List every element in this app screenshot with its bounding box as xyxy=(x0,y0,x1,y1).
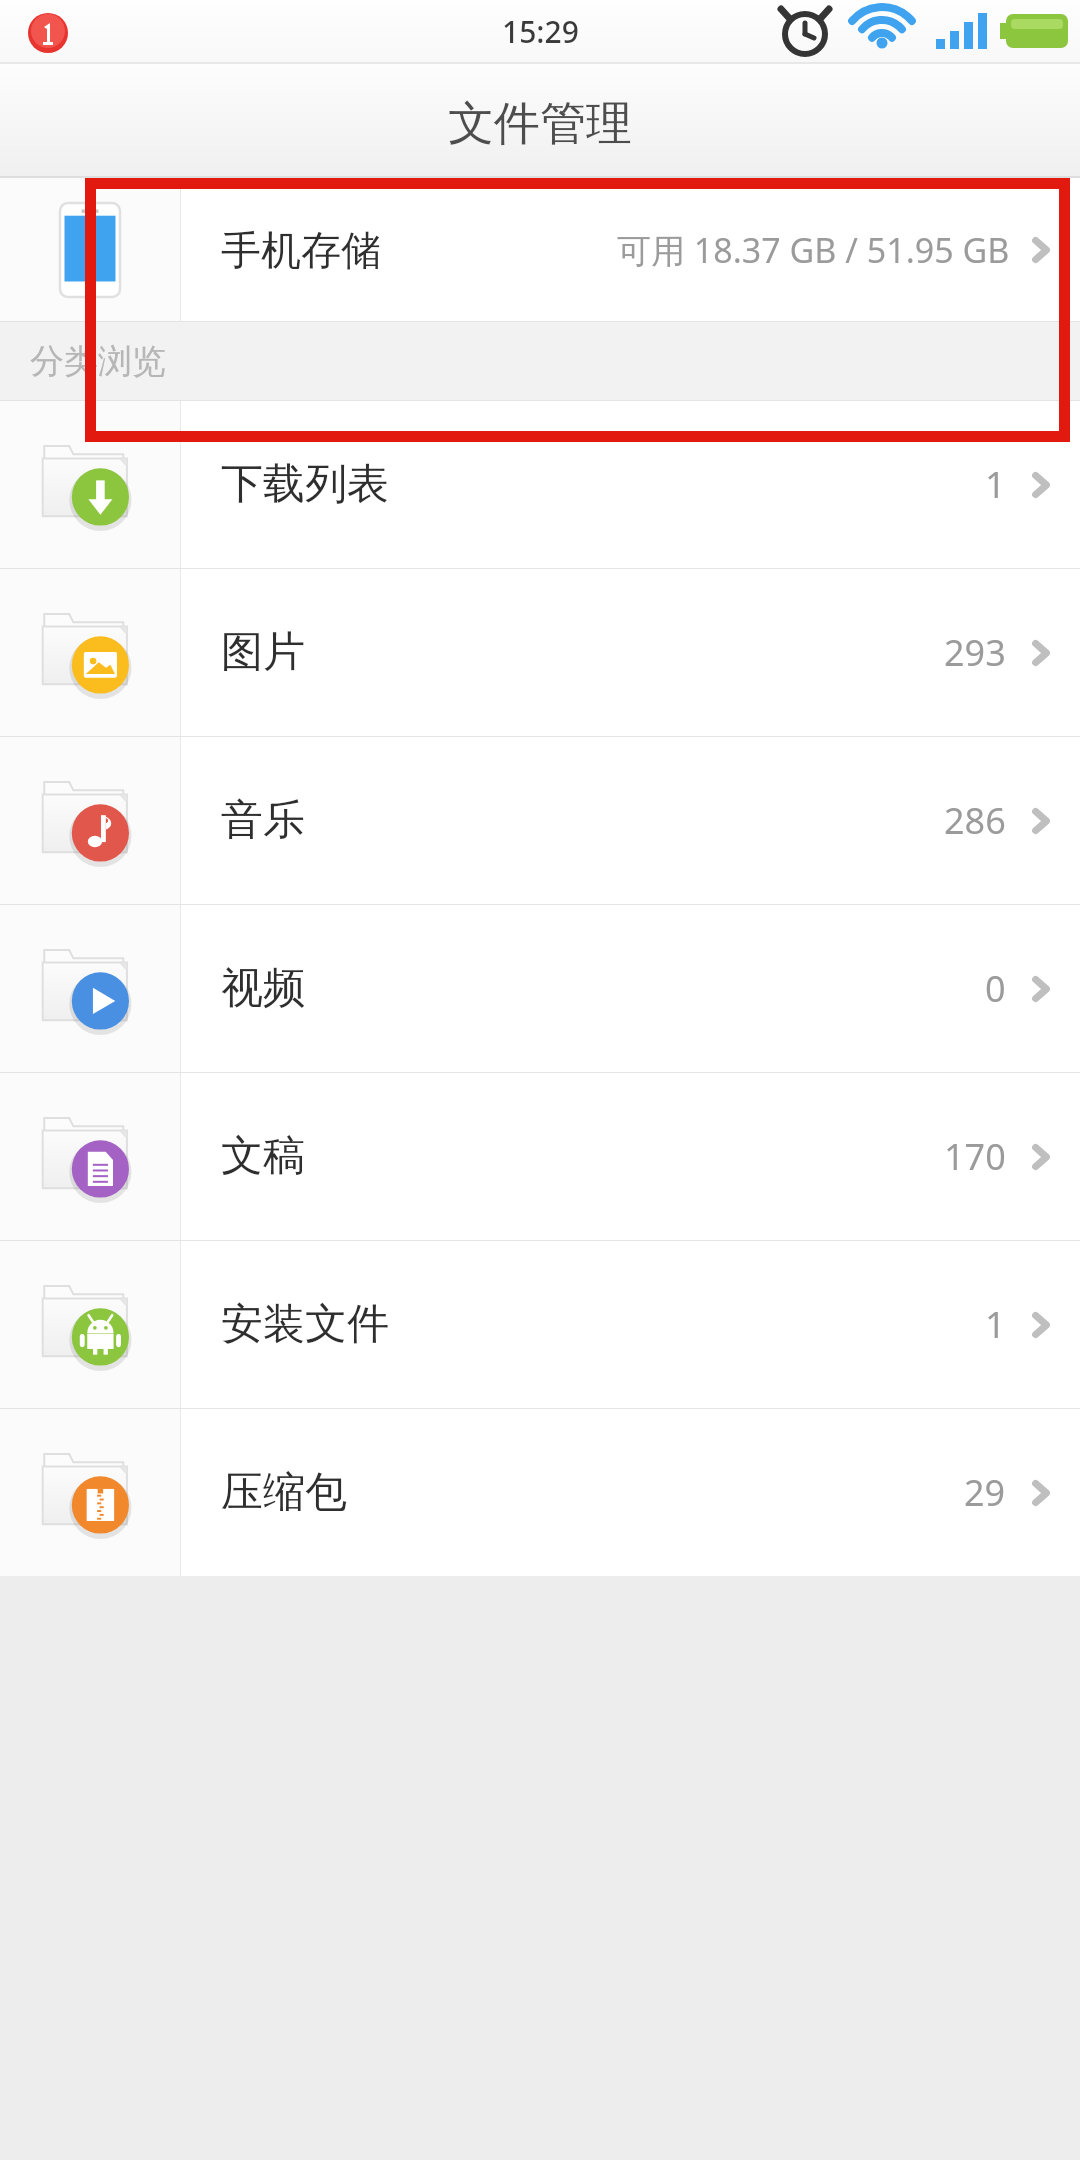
staticText: 压缩包 xyxy=(221,1466,347,1519)
button[interactable]: 压缩包 xyxy=(0,1409,1080,1576)
staticText: 安装文件 xyxy=(221,1298,389,1351)
staticText: 293 xyxy=(944,628,1006,677)
staticText: 可用 18.37 GB / 51.95 GB xyxy=(617,227,1010,273)
button[interactable]: 下载列表 xyxy=(0,401,1080,568)
staticText: 0 xyxy=(985,964,1006,1013)
staticText: 下载列表 xyxy=(221,458,389,511)
staticText: 文件管理 xyxy=(448,95,632,153)
staticText: 15:29 xyxy=(502,11,579,52)
button[interactable]: 手机存储 xyxy=(0,178,1080,321)
button[interactable]: 文稿 xyxy=(0,1073,1080,1240)
staticText: 手机存储 xyxy=(221,225,381,275)
staticText: 1 xyxy=(985,1300,1006,1349)
staticText: 分类浏览 xyxy=(30,340,166,383)
staticText: 170 xyxy=(944,1132,1006,1181)
staticText: 图片 xyxy=(221,626,305,679)
staticText: 1 xyxy=(985,460,1006,509)
staticText: 音乐 xyxy=(221,794,305,847)
button[interactable]: 音乐 xyxy=(0,737,1080,904)
button[interactable]: 视频 xyxy=(0,905,1080,1072)
staticText: 29 xyxy=(964,1468,1006,1517)
staticText: 286 xyxy=(944,796,1006,845)
other: Annotation highlight xyxy=(0,0,1080,2160)
staticText: 视频 xyxy=(221,962,305,1015)
button[interactable]: 安装文件 xyxy=(0,1241,1080,1408)
staticText: 文稿 xyxy=(221,1130,305,1183)
button[interactable]: 图片 xyxy=(0,569,1080,736)
